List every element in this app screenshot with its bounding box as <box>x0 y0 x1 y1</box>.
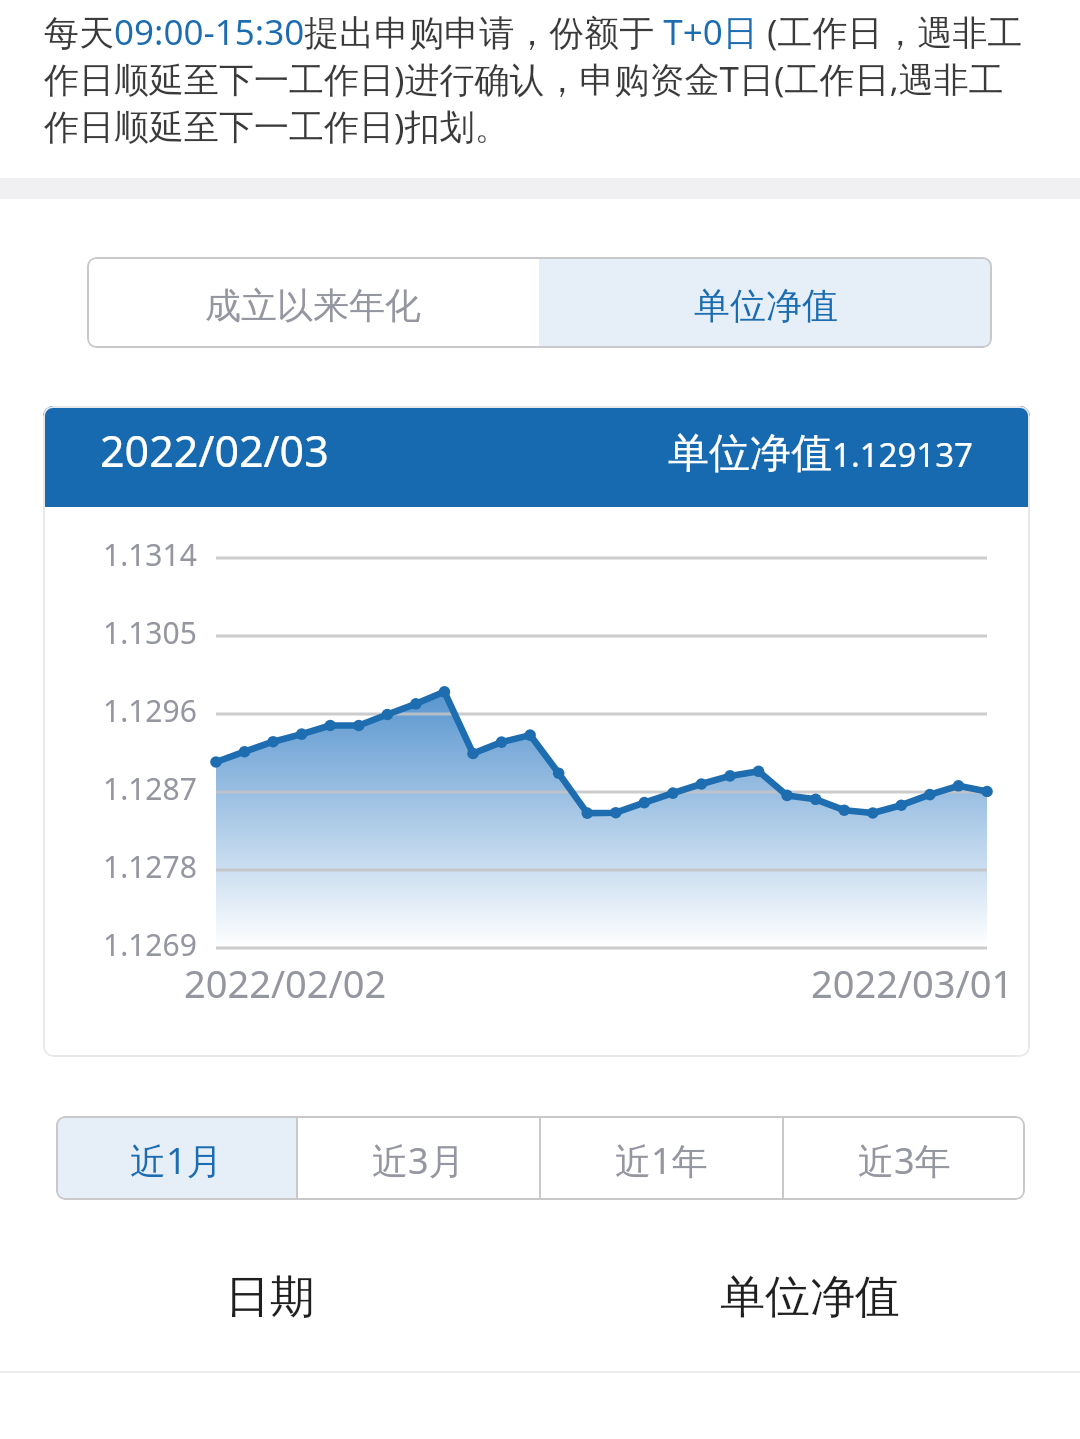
staticText: 单位净值1.129137 <box>668 428 973 480</box>
staticText: 1.1314 <box>103 534 197 575</box>
button[interactable]: 近1月 <box>56 1116 296 1200</box>
button[interactable]: 近1年 <box>541 1116 782 1200</box>
button[interactable]: 近3年 <box>784 1116 1025 1200</box>
staticText: 单位净值 <box>694 283 838 328</box>
staticText: 每天09:00-15:30提出申购申请，份额于 T+0日 (工作日，遇非工 作日… <box>44 8 1080 150</box>
staticText: 1.1287 <box>103 768 197 809</box>
staticText: 日期 <box>225 1269 315 1326</box>
staticText: 近1年 <box>615 1136 708 1185</box>
staticText: 2022/02/02 <box>184 957 387 1009</box>
staticText: 近3年 <box>858 1136 951 1185</box>
staticText: 1.1269 <box>103 924 197 965</box>
staticText: 2022/03/01 <box>811 957 1014 1009</box>
staticText: 2022/02/03 <box>100 421 329 480</box>
staticText: 1.1296 <box>103 690 197 731</box>
staticText: 成立以来年化 <box>205 283 421 328</box>
staticText: 1.1278 <box>103 846 197 887</box>
button[interactable]: 成立以来年化 <box>87 257 539 348</box>
button[interactable]: 近3月 <box>298 1116 539 1200</box>
staticText: 近3月 <box>372 1136 465 1185</box>
staticText: 单位净值 <box>720 1269 900 1326</box>
button[interactable]: 单位净值 <box>539 257 992 348</box>
staticText: 1.1305 <box>103 612 197 653</box>
staticText: 近1月 <box>130 1136 223 1185</box>
